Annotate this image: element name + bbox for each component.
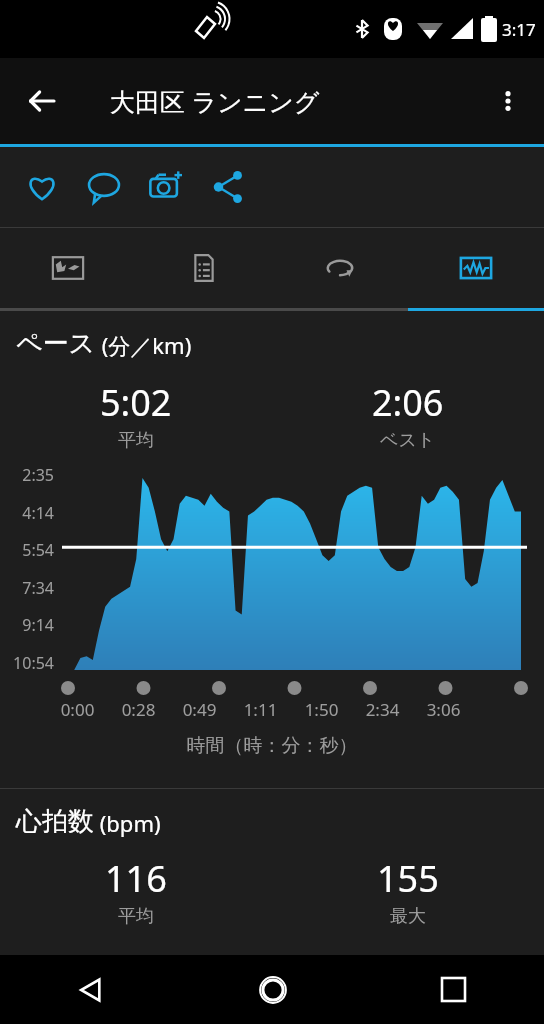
staticText: 3:17 xyxy=(502,18,536,41)
button[interactable]: Home xyxy=(182,955,363,1024)
button[interactable]: More options xyxy=(480,73,536,129)
staticText: 大田区 ランニング xyxy=(110,84,320,118)
button[interactable]: Laps xyxy=(272,228,408,308)
staticText: 心拍数 xyxy=(16,805,94,838)
staticText: 1:11 xyxy=(230,698,291,721)
staticText: 7:34 xyxy=(0,577,54,599)
staticText: 5:02 xyxy=(100,378,172,427)
staticText: ペース xyxy=(16,327,96,360)
staticText: 5:54 xyxy=(0,539,54,561)
button[interactable]: Map xyxy=(0,228,136,308)
staticText: (分／km) xyxy=(96,330,192,360)
staticText: ベスト xyxy=(380,429,436,452)
staticText: 155 xyxy=(377,854,439,903)
button[interactable]: Recent apps xyxy=(363,955,544,1024)
staticText: 平均 xyxy=(118,429,154,452)
staticText: 0:28 xyxy=(108,698,169,721)
staticText: (bpm) xyxy=(94,808,161,838)
button[interactable]: Back xyxy=(0,955,182,1024)
staticText: 最大 xyxy=(390,905,426,928)
staticText: 116 xyxy=(105,854,167,903)
button[interactable]: Graphs xyxy=(408,228,544,308)
button[interactable]: Details xyxy=(136,228,272,308)
staticText: 時間（時：分：秒） xyxy=(0,734,544,758)
button[interactable]: Comment xyxy=(78,161,130,213)
staticText: 1:50 xyxy=(291,698,352,721)
staticText: 2:06 xyxy=(372,378,444,427)
button[interactable]: Like xyxy=(16,161,68,213)
button[interactable]: Back xyxy=(14,73,70,129)
staticText: 2:35 xyxy=(0,464,54,486)
staticText: 0:49 xyxy=(169,698,230,721)
button[interactable]: Add photo xyxy=(140,161,192,213)
staticText: 9:14 xyxy=(0,614,54,636)
staticText: 4:14 xyxy=(0,502,54,524)
staticText: 3:06 xyxy=(413,698,474,721)
staticText: 2:34 xyxy=(352,698,413,721)
staticText: 平均 xyxy=(118,905,154,928)
staticText: 10:54 xyxy=(0,652,54,674)
staticText: 0:00 xyxy=(47,698,108,721)
button[interactable]: Share xyxy=(202,161,254,213)
